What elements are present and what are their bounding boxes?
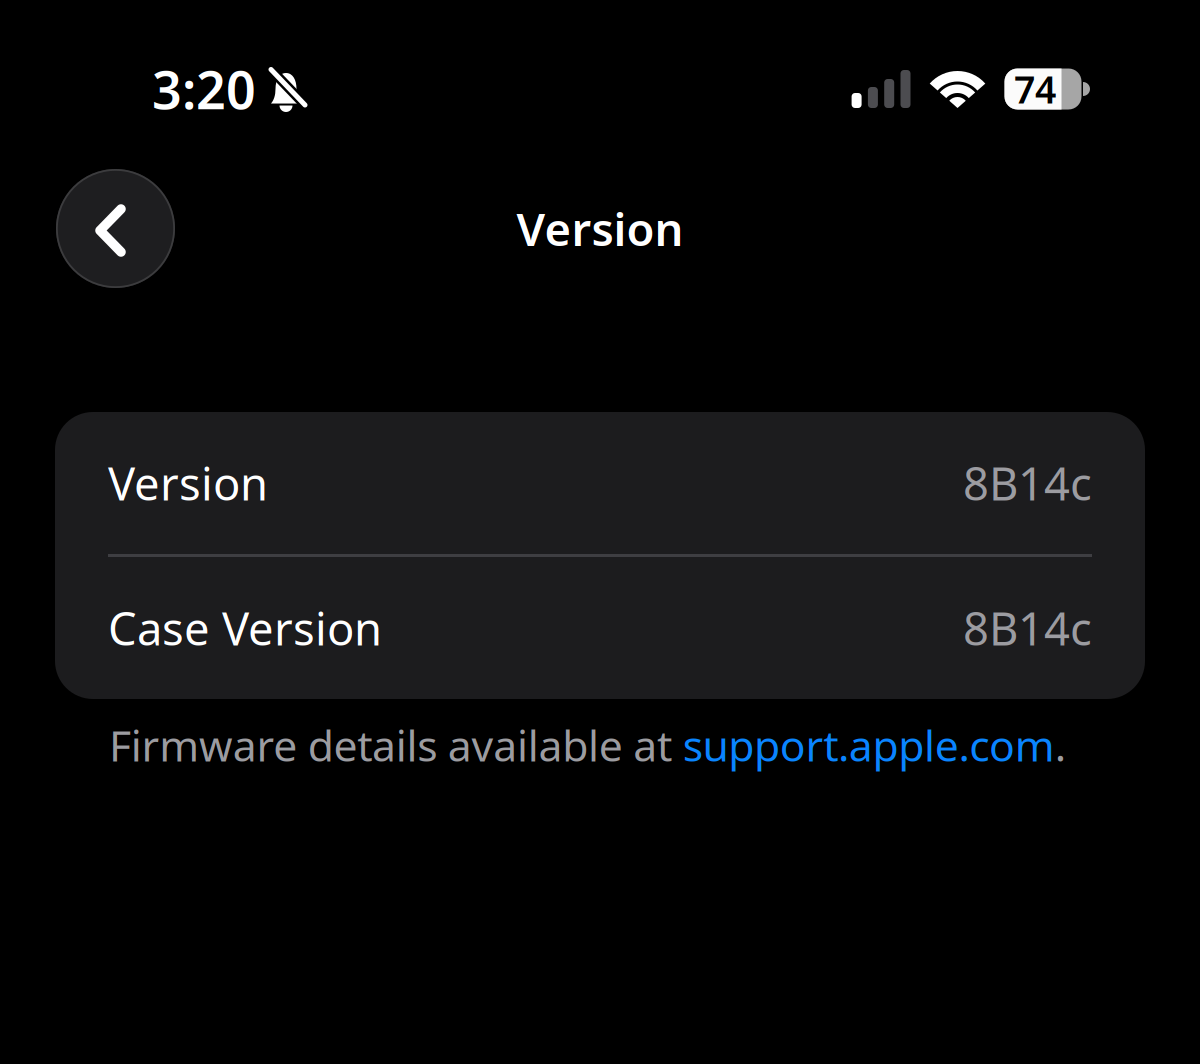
staticText: . (1055, 717, 1066, 773)
staticText: 8B14c (963, 598, 1092, 658)
staticText: Version (516, 198, 683, 259)
staticText: support.apple.com (683, 717, 1055, 773)
staticText: 3:20 (152, 54, 256, 124)
button[interactable]: Back (56, 169, 175, 288)
staticText: Case Version (108, 598, 382, 658)
staticText: Version (108, 453, 268, 513)
button[interactable]: Version (55, 412, 1145, 554)
staticText: Firmware details available at (109, 717, 683, 773)
staticText: 8B14c (963, 453, 1092, 513)
staticText: 74 (1014, 64, 1056, 114)
button[interactable]: support.apple.com (683, 717, 1055, 773)
button[interactable]: Case Version (55, 557, 1145, 699)
